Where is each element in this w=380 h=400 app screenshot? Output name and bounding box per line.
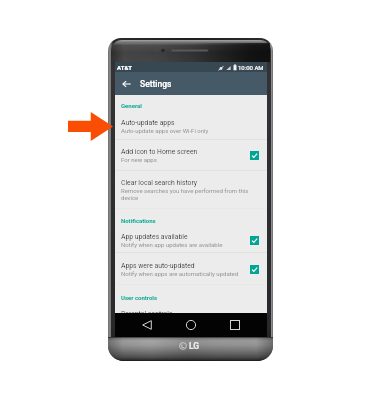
staticText: General xyxy=(121,102,142,109)
staticText: 10:00 AM xyxy=(238,64,264,71)
staticText: Add icon to Home screen xyxy=(121,148,198,156)
button[interactable]: App updates available xyxy=(115,228,267,253)
button[interactable]: Add icon to Home screen xyxy=(115,140,267,171)
button[interactable]: Clear local search history xyxy=(115,171,267,209)
staticText: Notify when apps are automatically updat… xyxy=(121,270,239,277)
staticText: Parental controls xyxy=(121,310,173,318)
staticText: Notifications xyxy=(121,217,156,224)
staticText: LG xyxy=(189,341,200,351)
button[interactable]: Back xyxy=(117,75,135,93)
staticText: For new apps xyxy=(121,156,157,163)
staticText: Apps were auto-updated xyxy=(121,262,195,270)
staticText: Auto-update apps xyxy=(121,119,175,127)
staticText: User controls xyxy=(121,294,158,301)
staticText: Clear local search history xyxy=(121,179,198,187)
button[interactable]: Recents xyxy=(225,315,245,335)
staticText: AT&T xyxy=(117,64,133,71)
staticText: Auto-update apps over Wi-Fi only xyxy=(121,127,209,134)
staticText: App updates available xyxy=(121,233,188,241)
staticText: Settings xyxy=(140,79,172,89)
staticText: Remove searches you have performed from … xyxy=(121,187,259,202)
button[interactable]: Back xyxy=(137,315,157,335)
button[interactable]: Apps were auto-updated xyxy=(115,253,267,285)
staticText: Notify when app updates are available xyxy=(121,241,223,248)
button[interactable]: Home xyxy=(181,315,201,335)
button[interactable]: Auto-update apps xyxy=(115,112,267,140)
